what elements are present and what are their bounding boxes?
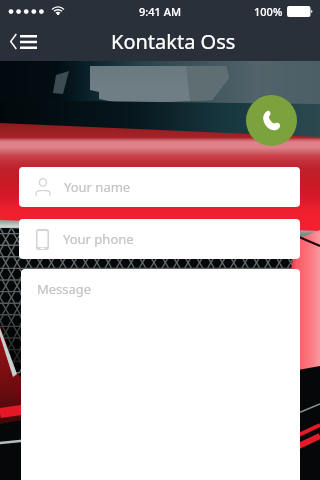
staticText: Message	[37, 280, 92, 298]
button[interactable]: Your phone	[19, 219, 300, 259]
button[interactable]: Menu	[4, 26, 43, 57]
staticText: 9:41 AM	[139, 4, 182, 19]
staticText: Your phone	[63, 230, 134, 248]
button[interactable]: Call	[246, 95, 297, 146]
staticText: Your name	[64, 178, 131, 196]
button[interactable]: Your name	[19, 167, 300, 207]
button[interactable]: Message	[21, 269, 300, 480]
staticText: Kontakta Oss	[111, 28, 236, 55]
staticText: 100%	[254, 4, 283, 19]
